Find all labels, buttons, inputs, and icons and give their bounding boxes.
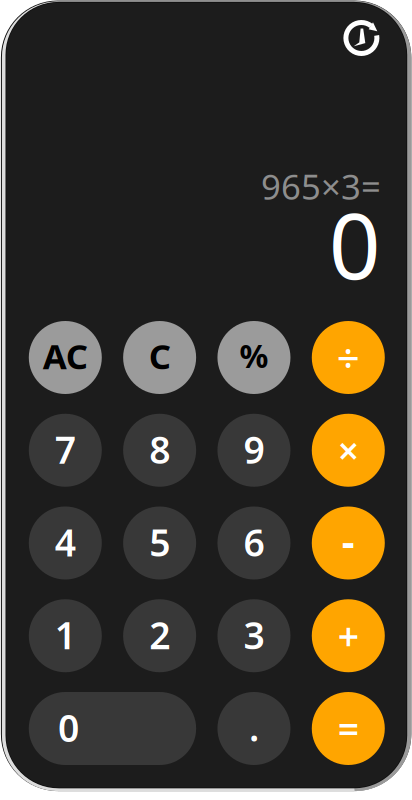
staticText: C — [149, 333, 171, 379]
staticText: AC — [43, 333, 88, 379]
button[interactable]: 7 — [29, 414, 102, 487]
button[interactable]: 2 — [123, 599, 196, 672]
staticText: × — [338, 425, 359, 475]
staticText: + — [338, 611, 359, 661]
button[interactable]: ÷ — [312, 321, 385, 394]
button[interactable]: 8 — [123, 414, 196, 487]
button[interactable]: 4 — [29, 506, 102, 579]
staticText: 0 — [58, 703, 79, 752]
staticText: 4 — [55, 517, 76, 567]
button[interactable]: % — [217, 321, 290, 394]
staticText: 965×3= — [261, 163, 381, 209]
staticText: 5 — [149, 517, 170, 567]
staticText: % — [239, 334, 268, 377]
button[interactable]: 5 — [123, 506, 196, 579]
button[interactable]: + — [312, 599, 385, 672]
button[interactable]: = — [312, 692, 385, 765]
staticText: 6 — [243, 517, 264, 567]
button[interactable]: 1 — [29, 599, 102, 672]
staticText: 9 — [243, 424, 264, 474]
button[interactable]: 3 — [217, 599, 290, 672]
staticText: 7 — [55, 424, 76, 474]
staticText: 8 — [149, 424, 170, 474]
button[interactable]: 0 — [29, 692, 196, 765]
button[interactable]: AC — [29, 321, 102, 394]
button[interactable]: History — [333, 10, 389, 66]
staticText: - — [342, 514, 355, 567]
staticText: 1 — [55, 610, 76, 660]
staticText: ÷ — [337, 331, 360, 384]
button[interactable]: C — [123, 321, 196, 394]
staticText: = — [338, 704, 359, 753]
button[interactable]: 6 — [217, 506, 290, 579]
button[interactable]: . — [217, 692, 290, 765]
staticText: 2 — [149, 610, 170, 660]
button[interactable]: - — [312, 506, 385, 579]
button[interactable]: × — [312, 414, 385, 487]
button[interactable]: 9 — [217, 414, 290, 487]
staticText: 3 — [243, 610, 264, 660]
staticText: . — [249, 702, 259, 752]
staticText: 0 — [329, 184, 381, 304]
